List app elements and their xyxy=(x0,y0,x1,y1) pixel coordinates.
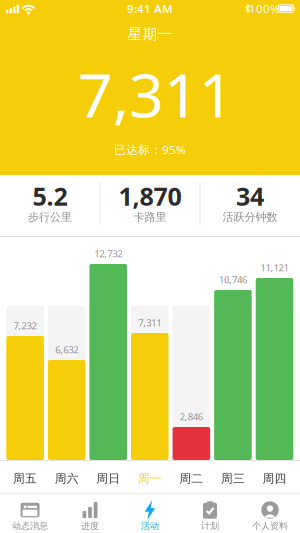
staticText: 34 xyxy=(236,179,264,213)
staticText: 星期一 xyxy=(127,25,172,43)
staticText: 周六 xyxy=(55,471,79,486)
staticText: 11,121 xyxy=(260,261,288,274)
staticText: 周日 xyxy=(96,471,120,486)
staticText: 周五 xyxy=(13,471,37,486)
button[interactable]: 个人资料 xyxy=(240,494,300,533)
staticText: 动态消息 xyxy=(12,520,48,532)
staticText: 周四 xyxy=(262,471,286,486)
staticText: 7,311 xyxy=(138,316,161,329)
staticText: 2,846 xyxy=(180,410,203,423)
staticText: 个人资料 xyxy=(252,520,288,532)
staticText: 7,311 xyxy=(78,53,234,135)
staticText: 12,732 xyxy=(94,247,122,260)
button[interactable]: 进度 xyxy=(60,494,120,533)
staticText: 卡路里 xyxy=(133,210,166,224)
staticText: 7,232 xyxy=(14,319,37,332)
staticText: 周一 xyxy=(138,471,162,486)
staticText: 周二 xyxy=(179,471,203,486)
staticText: 9:41 AM xyxy=(127,1,173,16)
staticText: 进度 xyxy=(81,520,99,532)
staticText: 活动 xyxy=(141,520,159,532)
staticText: 计划 xyxy=(201,520,219,532)
staticText: 100% xyxy=(249,1,280,16)
button[interactable]: 动态消息 xyxy=(0,494,60,533)
staticText: 步行公里 xyxy=(28,210,72,224)
button[interactable]: 计划 xyxy=(180,494,240,533)
staticText: 10,746 xyxy=(219,273,247,286)
staticText: 5.2 xyxy=(32,179,67,213)
button[interactable]: 活动 xyxy=(120,494,180,533)
staticText: 已达标：95% xyxy=(114,142,186,157)
staticText: 6,632 xyxy=(55,343,78,356)
staticText: 1,870 xyxy=(118,179,181,213)
staticText: 活跃分钟数 xyxy=(222,210,277,224)
staticText: 周三 xyxy=(221,471,245,486)
